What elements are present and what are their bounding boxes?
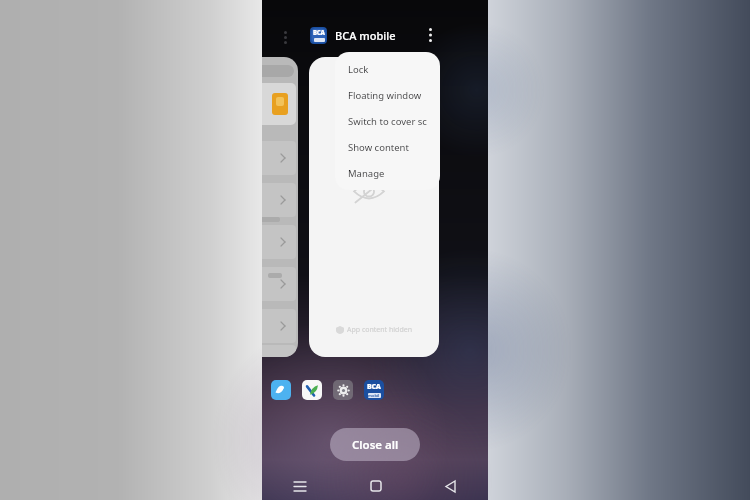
button[interactable]: Close all [330, 428, 420, 461]
button[interactable]: Home [338, 474, 413, 498]
button[interactable]: App icon [302, 380, 322, 400]
button[interactable]: More options [275, 26, 295, 48]
button[interactable] [262, 57, 298, 357]
button[interactable]: Show content [335, 134, 440, 160]
button[interactable]: Manage [335, 160, 440, 186]
button[interactable]: Recents [262, 474, 338, 498]
button[interactable]: App icon [333, 380, 353, 400]
staticText: BCA [367, 382, 381, 392]
staticText: App content hidden [347, 325, 412, 335]
button[interactable]: App content hidden [309, 57, 439, 357]
staticText: Manage [348, 167, 385, 180]
button[interactable]: Floating window [335, 82, 440, 108]
staticText: Floating window [348, 89, 422, 102]
staticText: BCA mobile [335, 28, 396, 43]
button[interactable]: Switch to cover scre [335, 108, 440, 134]
button[interactable]: Lock [335, 56, 440, 82]
staticText: Lock [348, 63, 369, 76]
staticText: Switch to cover scre [348, 115, 427, 128]
staticText: mobile [368, 393, 381, 398]
button[interactable]: Back [413, 474, 488, 498]
staticText: BCA [313, 29, 325, 37]
staticText: Close all [352, 437, 399, 453]
button[interactable]: More options [418, 23, 442, 47]
button[interactable]: App icon [271, 380, 291, 400]
button[interactable]: BCA mobile app icon [310, 27, 327, 44]
staticText: Show content [348, 141, 409, 154]
button[interactable]: App icon [364, 380, 384, 400]
